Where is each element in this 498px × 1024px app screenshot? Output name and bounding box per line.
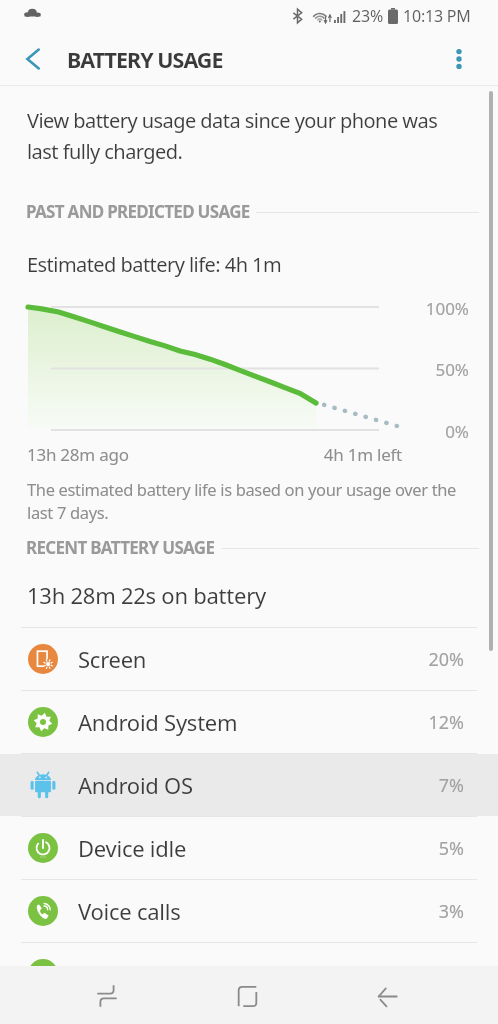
staticText: Android System (78, 707, 238, 737)
staticText: 100% (389, 297, 469, 320)
staticText: Estimated battery life: 4h 1m (27, 251, 282, 278)
staticText: 10:13 PM (403, 5, 471, 27)
staticText: 23% (352, 5, 384, 27)
staticText: View battery usage data since your phone… (27, 107, 438, 164)
staticText: 0% (389, 420, 469, 443)
staticText: 12% (384, 710, 464, 735)
staticText: 3% (384, 899, 464, 924)
staticText: The estimated battery life is based on y… (27, 478, 457, 524)
staticText: Device idle (78, 833, 187, 863)
button[interactable]: Back (352, 966, 422, 1024)
staticText: Cell standby (78, 959, 201, 989)
button[interactable]: Android OS (0, 754, 498, 816)
staticText: 20% (384, 647, 464, 672)
button[interactable]: Android System (0, 691, 498, 753)
staticText: Voice calls (78, 896, 181, 926)
button[interactable]: Cell standby (0, 943, 498, 1005)
staticText: 4h 1m left (282, 443, 402, 466)
button[interactable]: Navigate up (8, 36, 56, 84)
staticText: 50% (389, 358, 469, 381)
button[interactable]: Screen (0, 628, 498, 690)
staticText: RECENT BATTERY USAGE (26, 536, 215, 559)
button[interactable]: Home (212, 966, 282, 1024)
staticText: 13h 28m 22s on battery (27, 580, 266, 610)
staticText: Screen (78, 644, 147, 674)
staticText: 13h 28m ago (27, 443, 129, 466)
staticText: PAST AND PREDICTED USAGE (26, 200, 250, 223)
button[interactable]: More options (435, 36, 483, 84)
button[interactable]: Recents (72, 966, 142, 1024)
staticText: 5% (384, 836, 464, 861)
button[interactable]: Device idle (0, 817, 498, 879)
staticText: BATTERY USAGE (67, 45, 223, 74)
staticText: 7% (384, 773, 464, 798)
staticText: Android OS (78, 770, 193, 800)
button[interactable]: Voice calls (0, 880, 498, 942)
